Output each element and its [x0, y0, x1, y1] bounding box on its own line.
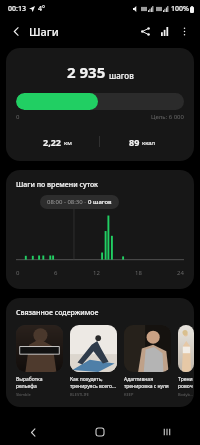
button[interactable]: Recent apps — [156, 421, 178, 443]
staticText: км — [64, 139, 72, 147]
staticText: Шаги по времени суток — [16, 180, 99, 190]
staticText: 2,22 — [43, 136, 62, 148]
staticText: ккал — [142, 139, 156, 147]
button[interactable]: More options — [175, 22, 193, 40]
staticText: 12 — [93, 269, 100, 277]
staticText: 4° — [38, 4, 45, 14]
staticText: Skimble — [16, 392, 31, 397]
staticText: Выработка рельефа — [16, 376, 43, 390]
staticText: Тренировоч программы — [178, 376, 194, 390]
staticText: 24 — [177, 269, 184, 277]
button[interactable]: Выработка рельефа — [16, 325, 63, 397]
button[interactable]: Back — [7, 22, 25, 40]
staticText: Адаптивная тренировка с нуля — [124, 376, 169, 390]
staticText: Bodybuilding — [178, 392, 194, 397]
staticText: Цель: 6 000 — [151, 113, 184, 121]
button[interactable]: 2 935 — [6, 48, 194, 161]
staticText: BLESTLIFE — [70, 392, 90, 397]
staticText: 0 шагов — [88, 198, 112, 206]
button[interactable]: Back — [22, 421, 44, 443]
staticText: шагов — [109, 70, 134, 81]
staticText: 6 — [54, 269, 58, 277]
staticText: 0 — [16, 269, 20, 277]
staticText: 00:13 — [8, 4, 26, 14]
button[interactable]: Statistics — [155, 21, 175, 41]
staticText: Связанное содержимое — [16, 308, 99, 318]
staticText: Как похудеть, тренируясь всего ... — [70, 376, 117, 390]
button[interactable]: Share — [135, 21, 155, 41]
staticText: 89 — [129, 136, 140, 148]
button[interactable]: Home — [89, 421, 111, 443]
button[interactable]: Как похудеть, тренируясь всего ... — [70, 325, 117, 397]
staticText: KEEP — [124, 392, 134, 397]
button[interactable]: Адаптивная тренировка с нуля — [124, 325, 171, 397]
button[interactable]: Тренировоч программы — [178, 325, 194, 397]
staticText: 18 — [135, 269, 142, 277]
staticText: 100% — [171, 4, 189, 14]
staticText: Шаги — [29, 24, 59, 39]
staticText: 08:00 - 08:30 · — [47, 198, 88, 206]
staticText: 0 — [16, 113, 20, 121]
staticText: 2 935 — [67, 62, 106, 82]
button[interactable]: Шаги по времени суток — [6, 170, 194, 289]
